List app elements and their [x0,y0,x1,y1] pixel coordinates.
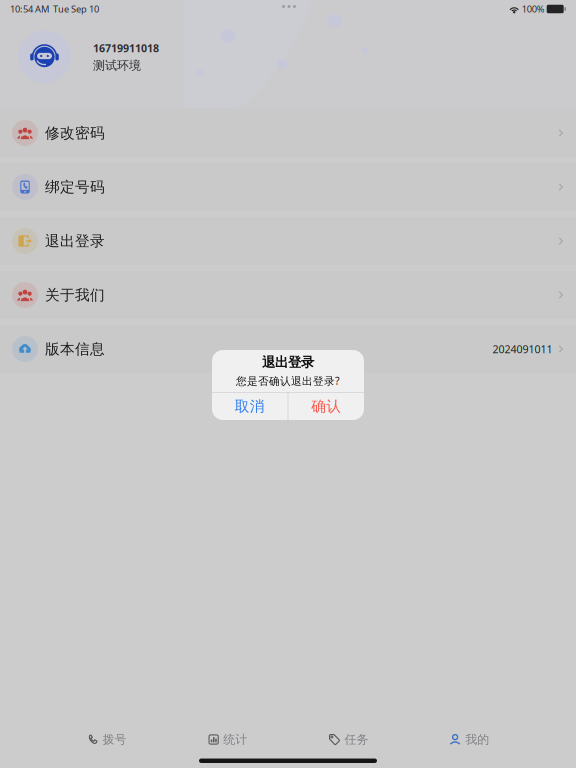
staticText: 退出登录 [45,232,105,250]
staticText: 2024091011 [492,342,552,356]
button[interactable]: 退出登录 [0,217,576,265]
staticText: 退出登录 [262,354,314,371]
staticText: 拨号 [102,732,126,747]
staticText: 关于我们 [45,286,105,304]
button[interactable]: 修改密码 [0,109,576,157]
button[interactable]: 统计 [167,723,288,755]
button[interactable]: 任务 [288,723,409,755]
staticText: 10:54 AM [10,3,49,15]
staticText: 修改密码 [45,124,105,142]
button[interactable]: 拨号 [46,723,167,755]
staticText: 版本信息 [45,340,105,358]
staticText: 16719911018 [93,41,159,55]
staticText: 绑定号码 [45,178,105,196]
button[interactable]: 我的 [409,723,530,755]
staticText: 测试环境 [93,58,141,73]
staticText: Tue Sep 10 [49,3,99,15]
button[interactable]: 版本信息 [0,325,576,373]
staticText: 确认 [311,397,341,415]
button[interactable]: 确认 [288,393,364,420]
button[interactable]: 绑定号码 [0,163,576,211]
staticText: 我的 [465,732,489,747]
staticText: 您是否确认退出登录? [236,374,340,388]
staticText: 任务 [344,732,368,747]
button[interactable]: 关于我们 [0,271,576,319]
staticText: 统计 [223,732,247,747]
staticText: 取消 [235,397,265,415]
staticText: 100% [520,3,547,15]
button[interactable]: 取消 [212,393,288,420]
